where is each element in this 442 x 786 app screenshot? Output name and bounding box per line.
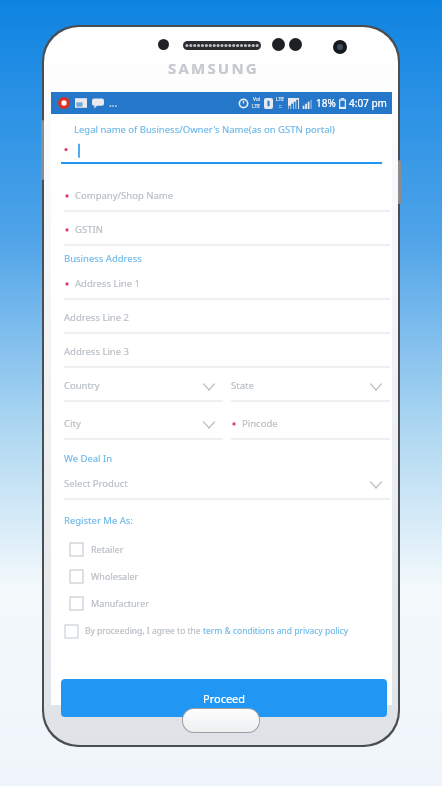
- button[interactable]: City: [64, 414, 223, 440]
- button[interactable]: Wholesaler: [70, 565, 270, 587]
- staticText: 18%: [316, 96, 336, 110]
- staticText: Select Product: [64, 477, 128, 490]
- button[interactable]: Address Line 3: [64, 342, 390, 368]
- staticText: Proceed: [203, 691, 246, 706]
- staticText: Address Line 3: [64, 345, 129, 358]
- button[interactable]: Select Product: [64, 474, 390, 500]
- staticText: Business Address: [64, 252, 142, 265]
- staticText: Vol: [253, 96, 261, 103]
- staticText: Register Me As:: [64, 514, 133, 527]
- staticText: State: [231, 379, 254, 392]
- button[interactable]: Pincode: [231, 414, 390, 440]
- button[interactable]: [61, 140, 382, 164]
- staticText: Retailer: [91, 543, 124, 555]
- button[interactable]: Manufacturer: [70, 592, 270, 614]
- staticText: SAMSUNG: [168, 58, 259, 78]
- staticText: Address Line 2: [64, 311, 129, 324]
- staticText: We Deal In: [64, 452, 113, 465]
- staticText: term & conditions and privacy policy: [203, 625, 349, 637]
- staticText: By proceeding, I agree to the: [85, 625, 203, 637]
- staticText: Legal name of Business/Owner's Name(as o…: [74, 123, 335, 136]
- staticText: GSTIN: [75, 223, 103, 236]
- staticText: City: [64, 417, 81, 430]
- button[interactable]: Company/Shop Name: [64, 186, 390, 212]
- button[interactable]: State: [231, 376, 390, 402]
- staticText: Country: [64, 379, 100, 392]
- staticText: ...: [109, 96, 118, 110]
- staticText: 4:07 pm: [349, 96, 387, 110]
- button[interactable]: Home: [183, 709, 259, 732]
- staticText: Pincode: [242, 417, 278, 430]
- button[interactable]: Retailer: [70, 538, 270, 560]
- staticText: LTE: [252, 103, 261, 110]
- button[interactable]: Proceed: [61, 679, 387, 717]
- staticText: LTE: [276, 96, 285, 103]
- staticText: Address Line 1: [75, 277, 140, 290]
- button[interactable]: Address Line 2: [64, 308, 390, 334]
- staticText: ::: [279, 103, 282, 110]
- staticText: Company/Shop Name: [75, 189, 173, 202]
- staticText: Wholesaler: [91, 570, 139, 582]
- button[interactable]: GSTIN: [64, 220, 390, 246]
- button[interactable]: By proceeding, I agree to the: [65, 620, 375, 642]
- button[interactable]: Country: [64, 376, 223, 402]
- button[interactable]: Address Line 1: [64, 274, 390, 300]
- staticText: Manufacturer: [91, 597, 149, 609]
